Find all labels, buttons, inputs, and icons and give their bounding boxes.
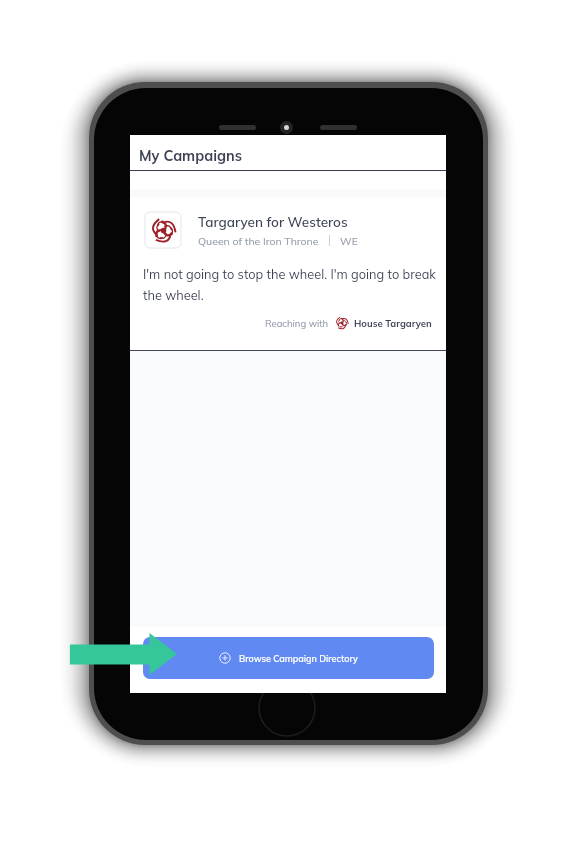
staticText: I'm not going to stop the wheel. I'm goi… xyxy=(143,266,436,303)
staticText: Targaryen for Westeros xyxy=(198,213,348,230)
other: Add xyxy=(219,652,231,664)
staticText: Browse Campaign Directory xyxy=(239,653,358,664)
button[interactable]: Add xyxy=(143,637,434,679)
staticText: My Campaigns xyxy=(139,146,242,164)
button[interactable]: Targaryen for Westeros xyxy=(130,197,446,351)
staticText: Reaching with xyxy=(265,317,329,329)
staticText: WE xyxy=(340,234,358,247)
staticText: Queen of the Iron Throne xyxy=(198,234,319,247)
staticText: House Targaryen xyxy=(354,317,432,329)
